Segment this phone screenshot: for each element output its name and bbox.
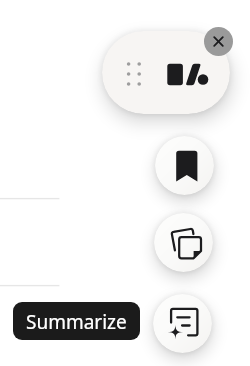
button[interactable]: Bookmark <box>155 136 214 195</box>
button[interactable]: Summarize <box>153 294 212 353</box>
staticText: Summarize <box>26 309 127 335</box>
button[interactable]: Copy <box>154 213 213 272</box>
button[interactable]: Toolbar <box>102 31 230 114</box>
button[interactable]: Summarize <box>13 302 140 340</box>
button[interactable]: Close <box>204 27 233 56</box>
